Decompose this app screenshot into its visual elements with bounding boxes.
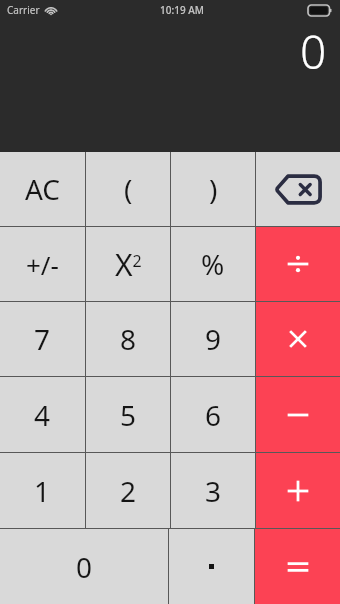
staticText: Carrier xyxy=(7,3,40,17)
staticText: 5 xyxy=(120,396,137,434)
button[interactable]: AC xyxy=(0,152,85,226)
button[interactable]: % xyxy=(171,227,255,301)
staticText: 7 xyxy=(34,320,51,358)
staticText: % xyxy=(201,245,225,283)
staticText: 1 xyxy=(34,472,51,510)
button[interactable]: Plus xyxy=(256,453,340,528)
button[interactable]: ( xyxy=(86,152,170,226)
staticText: ) xyxy=(209,170,218,208)
button[interactable]: 8 xyxy=(86,302,170,376)
staticText: 0 xyxy=(300,20,327,83)
staticText: X2 xyxy=(115,244,142,285)
button[interactable]: +/- xyxy=(0,227,85,301)
button[interactable]: Backspace xyxy=(256,152,340,226)
button[interactable]: Decimal point xyxy=(169,529,254,604)
staticText: 2 xyxy=(120,472,137,510)
button[interactable]: 5 xyxy=(86,377,170,452)
staticText: 10:19 AM xyxy=(160,3,204,17)
button[interactable]: 1 xyxy=(0,453,85,528)
button[interactable]: 9 xyxy=(171,302,255,376)
staticText: 3 xyxy=(205,472,222,510)
staticText: AC xyxy=(25,170,61,208)
button[interactable]: Multiply xyxy=(256,302,340,376)
staticText: ( xyxy=(124,170,133,208)
staticText: 4 xyxy=(34,396,51,434)
button[interactable]: 3 xyxy=(171,453,255,528)
staticText: 9 xyxy=(205,320,222,358)
staticText: 0 xyxy=(76,548,93,586)
button[interactable]: 0 xyxy=(0,529,168,604)
staticText: 6 xyxy=(205,396,222,434)
button[interactable]: ) xyxy=(171,152,255,226)
button[interactable]: 6 xyxy=(171,377,255,452)
button[interactable]: 7 xyxy=(0,302,85,376)
staticText: 8 xyxy=(120,320,137,358)
button[interactable]: 4 xyxy=(0,377,85,452)
button[interactable]: Equals xyxy=(255,529,340,604)
button[interactable]: Divide xyxy=(256,227,340,301)
button[interactable]: Minus xyxy=(256,377,340,452)
staticText: +/- xyxy=(26,247,59,282)
button[interactable]: X2 xyxy=(86,227,170,301)
button[interactable]: 2 xyxy=(86,453,170,528)
